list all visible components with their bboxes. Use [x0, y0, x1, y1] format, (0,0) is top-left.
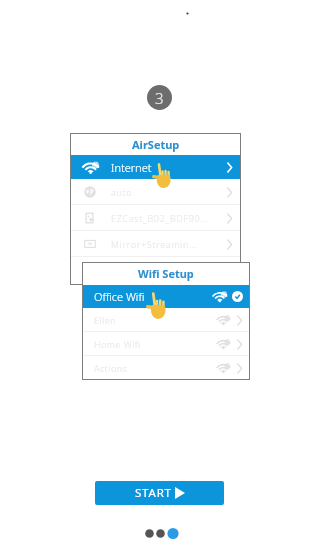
staticText: Ellen — [94, 314, 116, 326]
button[interactable]: Home Wifi — [82, 332, 250, 356]
staticText: Wifi Setup — [138, 266, 194, 281]
staticText: Mirror+Streamin... — [111, 238, 198, 250]
staticText: Internet — [111, 160, 152, 175]
staticText: auto — [111, 186, 133, 198]
staticText: START — [135, 485, 172, 501]
button[interactable]: Actions — [82, 356, 250, 380]
button[interactable]: START — [95, 481, 224, 505]
staticText: EZCast_B02_BDF90... — [111, 212, 210, 224]
button[interactable]: Ellen — [82, 308, 250, 332]
staticText: 3 — [155, 88, 164, 108]
staticText: AirSetup — [132, 137, 180, 152]
staticText: Home Wifi — [94, 338, 141, 350]
staticText: Actions — [94, 362, 128, 374]
button[interactable]: Internet — [70, 155, 241, 179]
staticText: Office Wifi — [94, 289, 145, 304]
button[interactable]: auto — [70, 179, 241, 205]
button[interactable]: EZCast_B02_BDF90... — [70, 205, 241, 231]
button[interactable]: Office Wifi — [82, 285, 250, 308]
button[interactable]: Mirror+Streamin... — [70, 231, 241, 257]
